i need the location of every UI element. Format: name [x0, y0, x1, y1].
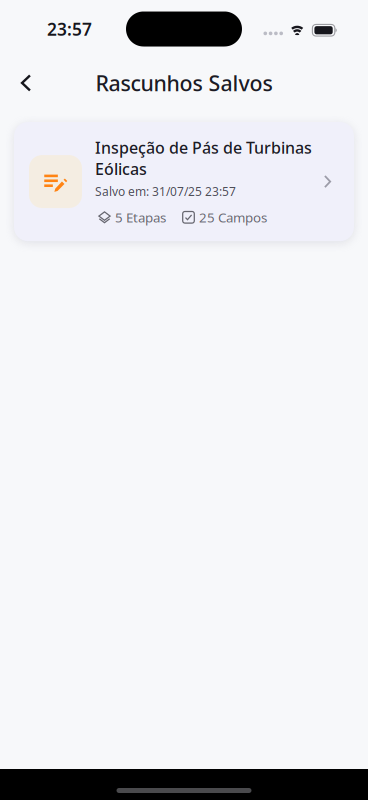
staticText: 5 Etapas [115, 208, 166, 226]
staticText: Rascunhos Salvos [95, 69, 272, 97]
button[interactable]: Inspeção de Pás de Turbinas Eólicas [14, 122, 354, 241]
staticText: 23:57 [47, 17, 92, 40]
staticText: 25 Campos [199, 208, 267, 226]
staticText: Inspeção de Pás de Turbinas Eólicas [95, 137, 312, 179]
button[interactable]: Back [8, 63, 44, 103]
staticText: Salvo em: 31/07/25 23:57 [95, 183, 236, 199]
